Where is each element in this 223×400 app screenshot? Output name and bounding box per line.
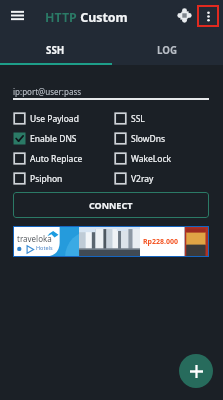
button[interactable]: V2ray (114, 172, 154, 185)
button[interactable]: Advertisement (13, 226, 209, 257)
button[interactable]: Navigation menu (6, 4, 28, 26)
staticText: Rp228.000 (143, 237, 179, 247)
button[interactable]: ip:port@user:pass (13, 86, 209, 100)
button[interactable]: Enable DNS (13, 132, 77, 145)
button[interactable]: SlowDns (114, 132, 166, 145)
staticText: LOG (157, 44, 178, 57)
staticText: Auto Replace (30, 153, 83, 165)
button[interactable]: More options (197, 5, 219, 27)
staticText: traveloka (17, 233, 52, 244)
button[interactable]: SSH (0, 30, 111, 65)
staticText: WakeLock (131, 153, 172, 165)
staticText: SSL (131, 113, 145, 125)
button[interactable]: SSL (114, 112, 145, 125)
staticText: Custom (77, 9, 128, 26)
staticText: Psiphon (30, 173, 63, 185)
button[interactable]: Use Payload (13, 112, 79, 125)
button[interactable]: WakeLock (114, 152, 172, 165)
staticText: ip:port@user:pass (13, 86, 82, 97)
button[interactable]: Psiphon (13, 172, 63, 185)
staticText: V2ray (131, 173, 154, 185)
button[interactable]: CONNECT (13, 192, 209, 218)
staticText: CONNECT (89, 199, 133, 211)
staticText: SlowDns (131, 133, 166, 145)
staticText: Hotels (36, 244, 53, 251)
staticText: HTTP (45, 9, 77, 26)
button[interactable]: Plugins (173, 4, 195, 26)
button[interactable]: Add (179, 354, 213, 388)
staticText: Use Payload (30, 113, 79, 125)
button[interactable]: Auto Replace (13, 152, 83, 165)
staticText: Enable DNS (30, 133, 77, 145)
staticText: SSH (46, 44, 65, 57)
button[interactable]: LOG (111, 30, 223, 65)
